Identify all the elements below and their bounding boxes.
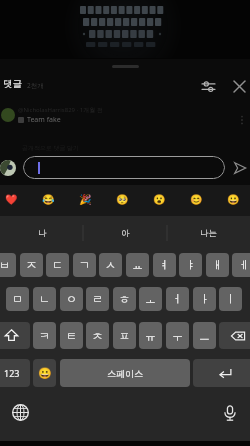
button[interactable]: ㄹ bbox=[86, 287, 109, 311]
staticText: ㅎ bbox=[119, 292, 130, 306]
button[interactable]: ㅑ bbox=[179, 253, 202, 277]
staticText: ㄴ bbox=[39, 292, 50, 306]
staticText: 2천개 bbox=[27, 81, 44, 90]
staticText: ㅑ bbox=[185, 258, 196, 272]
button[interactable]: ㄱ bbox=[73, 253, 96, 277]
staticText: 나 bbox=[38, 228, 47, 239]
button[interactable]: Enter bbox=[193, 359, 250, 387]
staticText: 나는 bbox=[200, 228, 217, 239]
staticText: ㅏ bbox=[199, 292, 210, 306]
button[interactable] bbox=[23, 156, 225, 179]
staticText: 🥺 bbox=[116, 194, 129, 206]
staticText: 😀 bbox=[227, 194, 240, 206]
staticText: ㅍ bbox=[119, 329, 130, 343]
staticText: ㅁ bbox=[12, 292, 23, 306]
button[interactable]: ㅊ bbox=[86, 322, 109, 349]
staticText: 😮 bbox=[153, 194, 166, 206]
staticText: ㅣ bbox=[225, 292, 236, 306]
button[interactable]: ㅛ bbox=[126, 253, 149, 277]
staticText: ㄷ bbox=[52, 258, 63, 272]
button[interactable]: ㅕ bbox=[153, 253, 176, 277]
button[interactable]: ㅠ bbox=[139, 322, 162, 349]
staticText: 😊 bbox=[190, 194, 203, 206]
button[interactable]: Voice input bbox=[215, 398, 244, 427]
staticText: ㄹ bbox=[92, 292, 103, 306]
button[interactable]: ㅍ bbox=[113, 322, 136, 349]
button[interactable]: ㅔ bbox=[232, 253, 250, 277]
button[interactable]: React bbox=[144, 185, 174, 215]
button[interactable]: ㅏ bbox=[193, 287, 216, 311]
staticText: ㅇ bbox=[66, 292, 77, 306]
staticText: ㅡ bbox=[199, 329, 210, 343]
button[interactable]: ㅅ bbox=[99, 253, 122, 277]
button[interactable]: React bbox=[0, 185, 26, 215]
button[interactable]: ㅗ bbox=[139, 287, 162, 311]
staticText: 댓글 bbox=[3, 78, 22, 90]
button[interactable]: ㅇ bbox=[60, 287, 83, 311]
staticText: 🎉 bbox=[79, 194, 92, 206]
button[interactable]: React bbox=[33, 185, 63, 215]
staticText: @NicholasHarris829 · 1개월 전 bbox=[18, 106, 103, 114]
button[interactable]: 스페이스 bbox=[60, 359, 190, 387]
staticText: 😂 bbox=[42, 194, 55, 206]
button[interactable]: ㅋ bbox=[33, 322, 56, 349]
button[interactable]: React bbox=[70, 185, 100, 215]
button[interactable]: ㅡ bbox=[193, 322, 216, 349]
button[interactable]: 아 bbox=[84, 216, 167, 250]
staticText: ㅗ bbox=[145, 292, 156, 306]
button[interactable]: React bbox=[107, 185, 137, 215]
button[interactable]: React bbox=[181, 185, 211, 215]
staticText: ㅊ bbox=[92, 329, 103, 343]
staticText: ❤️ bbox=[5, 194, 18, 206]
staticText: Team fake bbox=[27, 115, 61, 125]
button[interactable]: Emoji bbox=[33, 359, 56, 387]
button[interactable]: Change language bbox=[6, 398, 35, 427]
button[interactable]: Backspace bbox=[219, 322, 250, 349]
button[interactable]: More options bbox=[234, 112, 250, 128]
button[interactable]: Shift bbox=[0, 322, 30, 349]
button[interactable]: ㄴ bbox=[33, 287, 56, 311]
button[interactable]: ㅣ bbox=[219, 287, 242, 311]
staticText: 😀 bbox=[38, 367, 52, 380]
staticText: ㅠ bbox=[145, 329, 156, 343]
button[interactable]: ㅌ bbox=[60, 322, 83, 349]
button[interactable]: Send bbox=[230, 158, 249, 177]
button[interactable]: Close bbox=[228, 75, 250, 97]
staticText: 공개적으로 댓글 달기 bbox=[22, 144, 80, 152]
button[interactable]: Sort comments bbox=[197, 75, 219, 97]
button[interactable]: 나는 bbox=[167, 216, 250, 250]
staticText: ㅐ bbox=[212, 258, 223, 272]
staticText: ㅕ bbox=[159, 258, 170, 272]
staticText: ㅅ bbox=[105, 258, 116, 272]
button[interactable]: 나 bbox=[0, 216, 84, 250]
staticText: ㅂ bbox=[0, 258, 10, 272]
button[interactable]: ㅜ bbox=[166, 322, 189, 349]
staticText: ㅓ bbox=[172, 292, 183, 306]
button[interactable]: ㅈ bbox=[20, 253, 43, 277]
staticText: ㅋ bbox=[39, 329, 50, 343]
staticText: ㄱ bbox=[79, 258, 90, 272]
button[interactable]: ㅎ bbox=[113, 287, 136, 311]
button[interactable]: ㄷ bbox=[46, 253, 69, 277]
staticText: ㅛ bbox=[132, 258, 143, 272]
button[interactable]: ㅁ bbox=[6, 287, 29, 311]
staticText: 스페이스 bbox=[107, 368, 143, 379]
staticText: ㅈ bbox=[26, 258, 37, 272]
staticText: ㅌ bbox=[66, 329, 77, 343]
staticText: 123 bbox=[4, 367, 20, 379]
button[interactable]: React bbox=[218, 185, 248, 215]
button[interactable]: @NicholasHarris829 · 1개월 전 bbox=[0, 104, 250, 134]
button[interactable]: ㅂ bbox=[0, 253, 16, 277]
button[interactable]: ㅓ bbox=[166, 287, 189, 311]
staticText: ㅔ bbox=[238, 258, 249, 272]
button[interactable]: ㅐ bbox=[206, 253, 229, 277]
staticText: 아 bbox=[121, 228, 130, 239]
button[interactable]: 123 bbox=[0, 359, 30, 387]
staticText: ㅜ bbox=[172, 329, 183, 343]
